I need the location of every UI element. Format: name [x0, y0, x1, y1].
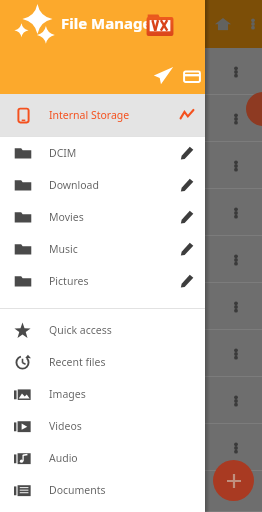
button[interactable]: Edit Pictures — [180, 274, 194, 288]
button[interactable]: Recent files — [0, 346, 205, 378]
staticText: Images — [49, 387, 86, 401]
button[interactable]: Pictures — [0, 265, 205, 297]
staticText: Internal Storage — [49, 108, 130, 122]
button[interactable]: Item options — [229, 253, 243, 267]
button[interactable]: Movies — [0, 201, 205, 233]
button[interactable]: Item options — [229, 441, 243, 455]
button[interactable]: Item options — [229, 394, 243, 408]
button[interactable]: Item options — [0, 330, 262, 377]
button[interactable]: Documents — [0, 474, 205, 506]
button[interactable]: Edit Download — [180, 178, 194, 192]
staticText: Download — [49, 178, 99, 192]
button[interactable]: Images — [0, 378, 205, 410]
staticText: DCIM — [49, 146, 77, 160]
button[interactable]: Storage card — [183, 68, 201, 86]
button[interactable]: More options — [246, 17, 260, 31]
button[interactable]: Item options — [229, 485, 243, 499]
staticText: Movies — [49, 210, 84, 224]
staticText: Quick access — [49, 323, 112, 337]
button[interactable]: Internal Storage — [0, 94, 205, 136]
button[interactable]: Item options — [0, 48, 262, 95]
button[interactable]: Edit DCIM — [180, 146, 194, 160]
button[interactable]: Edit Music — [180, 242, 194, 256]
button[interactable]: Edit Movies — [180, 210, 194, 224]
button[interactable]: Item options — [0, 283, 262, 330]
button[interactable]: Videos — [0, 410, 205, 442]
button[interactable]: Item options — [0, 424, 262, 471]
staticText: Recent files — [49, 355, 106, 369]
button[interactable]: Item options — [0, 471, 262, 512]
button[interactable]: Home — [214, 15, 232, 33]
staticText: Documents — [49, 483, 106, 497]
button[interactable]: Item options — [0, 236, 262, 283]
button[interactable]: Item options — [229, 300, 243, 314]
button[interactable]: Item options — [229, 206, 243, 220]
button[interactable]: Item options — [0, 95, 262, 142]
button[interactable]: Music — [0, 233, 205, 265]
staticText: Pictures — [49, 274, 89, 288]
button[interactable]: Item options — [229, 347, 243, 361]
staticText: Audio — [49, 451, 78, 465]
button[interactable]: Audio — [0, 442, 205, 474]
button[interactable]: Item options — [229, 159, 243, 173]
button[interactable]: Item options — [0, 377, 262, 424]
button[interactable]: Send — [153, 65, 174, 86]
button[interactable]: DCIM — [0, 137, 205, 169]
button[interactable]: Quick access — [0, 314, 205, 346]
button[interactable]: Storage analysis — [180, 108, 194, 122]
button[interactable]: Add — [213, 460, 254, 501]
button[interactable]: Item options — [0, 142, 262, 189]
button[interactable]: Item options — [0, 189, 262, 236]
staticText: Music — [49, 242, 78, 256]
staticText: Videos — [49, 419, 82, 433]
button[interactable]: Item options — [229, 65, 243, 79]
button[interactable]: Download — [0, 169, 205, 201]
button[interactable]: Item options — [229, 112, 243, 126]
staticText: File Manager — [61, 13, 159, 33]
